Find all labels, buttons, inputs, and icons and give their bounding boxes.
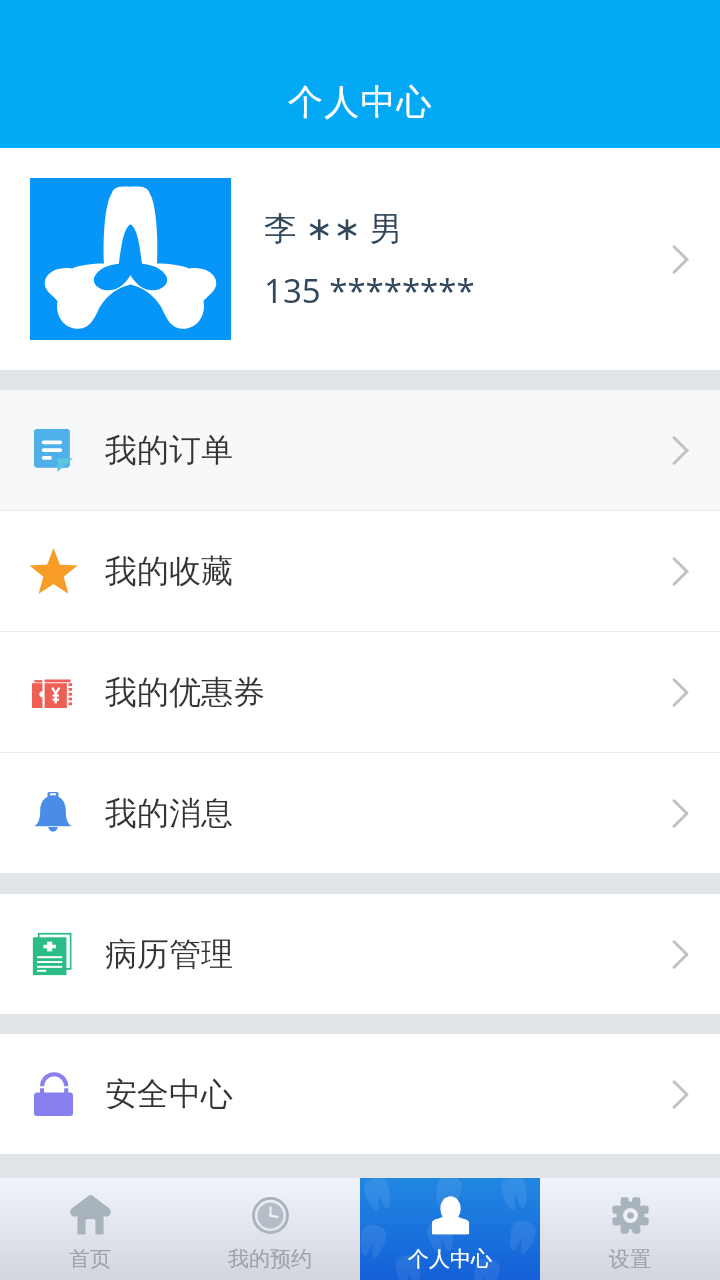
staticText: 我的订单 [105, 430, 233, 470]
other: 首页 [70, 1195, 111, 1235]
button[interactable]: 个人中心 [360, 1178, 540, 1280]
staticText: 我的预约 [228, 1246, 312, 1272]
staticText: 我的消息 [105, 793, 233, 833]
button[interactable]: 李 ∗∗ 男 [0, 148, 720, 370]
staticText: 病历管理 [105, 934, 233, 974]
button[interactable]: 首页 [0, 1178, 180, 1280]
button[interactable]: 我的预约 [180, 1178, 360, 1280]
staticText: 135 ******** [264, 268, 475, 313]
button[interactable]: 我的消息 [0, 753, 720, 873]
staticText: 我的收藏 [105, 551, 233, 591]
staticText: 我的优惠券 [105, 672, 265, 712]
staticText: 李 ∗∗ 男 [264, 205, 403, 250]
button[interactable]: 设置 [540, 1178, 720, 1280]
button[interactable]: 我的订单 [0, 390, 720, 510]
staticText: 首页 [69, 1246, 111, 1272]
other: 设置 [611, 1196, 650, 1235]
button[interactable]: 病历管理 [0, 894, 720, 1014]
button[interactable]: 安全中心 [0, 1034, 720, 1154]
staticText: 设置 [609, 1246, 651, 1272]
other: 我的预约 [252, 1197, 289, 1234]
staticText: 个人中心 [288, 80, 433, 124]
button[interactable]: 我的收藏 [0, 511, 720, 631]
other: 个人中心 [431, 1195, 470, 1235]
staticText: 安全中心 [105, 1074, 233, 1114]
staticText: 个人中心 [408, 1246, 492, 1272]
button[interactable]: 我的优惠券 [0, 632, 720, 752]
